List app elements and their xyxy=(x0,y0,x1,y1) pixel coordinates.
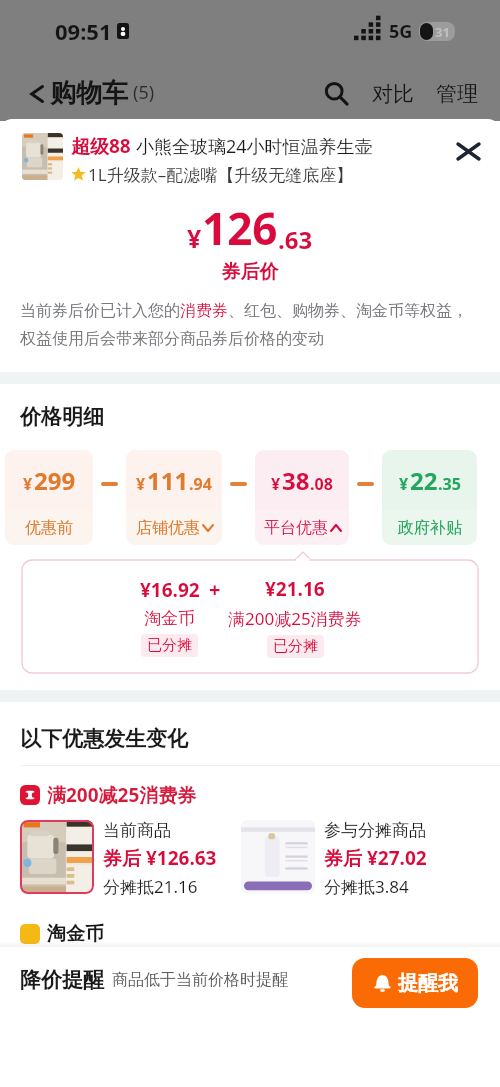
staticText: ¥ xyxy=(399,473,409,495)
staticText: ¥21.16 xyxy=(265,576,325,602)
staticText: 对比 xyxy=(372,81,414,107)
staticText: 券后价 xyxy=(0,260,500,284)
button[interactable]: ¥ xyxy=(5,450,93,545)
staticText: 当前券后价已计入您的消费券、红包、购物券、淘金币等权益， 权益使用后会带来部分商… xyxy=(20,301,468,349)
staticText: 分摊抵21.16 xyxy=(103,875,198,898)
button[interactable]: ¥ xyxy=(126,450,222,545)
staticText: 价格明细 xyxy=(20,404,104,430)
staticText: 商品低于当前价格时提醒 xyxy=(112,970,288,990)
staticText: 政府补贴 xyxy=(398,518,462,538)
staticText: .08 xyxy=(310,473,333,495)
staticText: 299 xyxy=(34,464,76,497)
staticText: .63 xyxy=(278,223,313,256)
staticText: ¥ xyxy=(271,473,281,495)
staticText: 购物车 xyxy=(50,77,128,110)
staticText: 22 xyxy=(410,464,438,497)
staticText: 当前商品 xyxy=(103,820,171,841)
staticText: .94 xyxy=(189,473,212,495)
staticText: 券后 ¥126.63 xyxy=(103,845,217,871)
staticText: 店铺优惠 xyxy=(136,518,200,538)
staticText: 券后 ¥27.02 xyxy=(324,845,427,871)
button[interactable]: ¥ xyxy=(382,450,477,545)
staticText: ¥ xyxy=(23,473,33,495)
staticText: ¥ xyxy=(187,221,202,255)
staticText: 平台优惠 xyxy=(264,518,328,538)
button[interactable]: Close xyxy=(450,133,486,169)
staticText: .35 xyxy=(438,473,461,495)
staticText: 111 xyxy=(147,464,189,497)
staticText: 已分摊 xyxy=(273,637,318,656)
staticText: 淘金币 xyxy=(144,608,195,629)
staticText: 31 xyxy=(435,23,450,41)
staticText: 1L升级款–配滤嘴【升级无缝底座】 xyxy=(88,163,354,186)
button[interactable]: ¥ xyxy=(255,450,349,545)
staticText: 管理 xyxy=(436,81,478,107)
staticText: ¥16.92 xyxy=(140,577,200,603)
staticText: 小熊全玻璃24小时恒温养生壶 xyxy=(136,134,373,159)
staticText: 优惠前 xyxy=(25,518,73,538)
staticText: 09:51 xyxy=(55,16,112,46)
staticText: 5G xyxy=(389,19,413,44)
staticText: 38 xyxy=(282,464,310,497)
staticText: 淘金币 xyxy=(47,922,104,946)
staticText: 满200减25消费券 xyxy=(47,782,197,808)
staticText: 超级88 xyxy=(71,133,131,159)
staticText: 提醒我 xyxy=(398,971,458,996)
staticText: 参与分摊商品 xyxy=(324,820,426,841)
staticText: 分摊抵3.84 xyxy=(324,875,409,898)
staticText: 已分摊 xyxy=(147,636,192,655)
staticText: 降价提醒 xyxy=(20,967,104,993)
staticText: 满200减25消费券 xyxy=(228,607,362,630)
staticText: (5) xyxy=(133,80,155,105)
button[interactable]: 提醒我 xyxy=(352,958,478,1008)
staticText: + xyxy=(209,576,221,603)
staticText: ¥ xyxy=(136,473,146,495)
staticText: 以下优惠发生变化 xyxy=(20,726,188,752)
staticText: 126 xyxy=(202,198,278,258)
